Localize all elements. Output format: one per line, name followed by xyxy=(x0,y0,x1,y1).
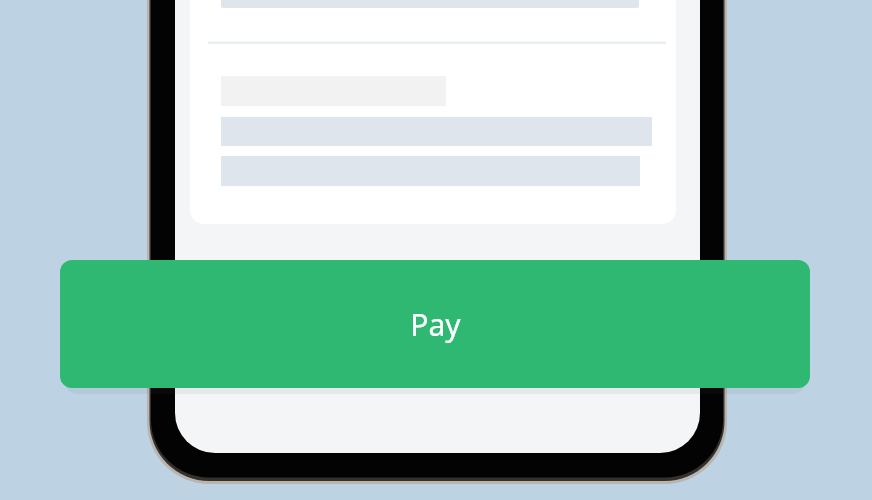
button[interactable]: Pay xyxy=(60,260,810,388)
staticText: Pay xyxy=(410,304,461,345)
